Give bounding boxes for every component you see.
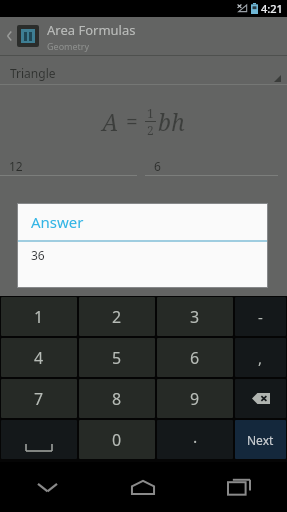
staticText: .: [193, 426, 198, 448]
button[interactable]: 2: [79, 297, 155, 336]
staticText: 6: [190, 347, 200, 369]
button[interactable]: ,: [235, 338, 286, 377]
staticText: 12: [9, 158, 23, 174]
staticText: 5: [112, 347, 122, 369]
button[interactable]: Answer: [18, 204, 267, 287]
staticText: Geometry: [47, 40, 90, 52]
staticText: Next: [247, 432, 274, 448]
staticText: 9: [190, 388, 200, 410]
button[interactable]: Back: [0, 462, 95, 512]
button[interactable]: 1: [1, 297, 77, 336]
staticText: ,: [258, 348, 263, 368]
button[interactable]: Space: [1, 420, 77, 459]
button[interactable]: Delete: [235, 379, 286, 418]
button[interactable]: 8: [79, 379, 155, 418]
staticText: bh: [158, 106, 185, 137]
staticText: 0: [112, 429, 122, 451]
staticText: 2: [147, 122, 154, 138]
staticText: 4:21: [261, 1, 283, 16]
staticText: 7: [34, 388, 44, 410]
staticText: A: [102, 106, 119, 137]
staticText: Answer: [31, 212, 84, 232]
staticText: Triangle: [10, 65, 56, 81]
button[interactable]: Triangle: [0, 56, 287, 85]
button[interactable]: 3: [157, 297, 233, 336]
staticText: 1: [147, 105, 154, 121]
staticText: =: [126, 107, 138, 136]
button[interactable]: .: [157, 420, 233, 459]
button[interactable]: Next: [235, 420, 286, 459]
button[interactable]: 12: [0, 157, 137, 176]
button[interactable]: -: [235, 297, 286, 336]
staticText: 36: [31, 247, 45, 263]
button[interactable]: 9: [157, 379, 233, 418]
staticText: 6: [154, 158, 161, 174]
button[interactable]: 4: [1, 338, 77, 377]
staticText: 1: [34, 306, 44, 328]
staticText: 4: [34, 347, 44, 369]
staticText: 8: [112, 388, 122, 410]
button[interactable]: 5: [79, 338, 155, 377]
button[interactable]: Navigate up: [0, 17, 287, 55]
staticText: 2: [112, 306, 122, 328]
button[interactable]: 0: [79, 420, 155, 459]
staticText: 3: [190, 306, 200, 328]
staticText: Area Formulas: [47, 21, 136, 39]
staticText: -: [258, 307, 263, 327]
button[interactable]: Home: [95, 462, 191, 512]
button[interactable]: 6: [157, 338, 233, 377]
button[interactable]: Navigate up: [3, 17, 15, 55]
button[interactable]: 7: [1, 379, 77, 418]
button[interactable]: Recent apps: [191, 462, 287, 512]
button[interactable]: 6: [145, 157, 278, 176]
